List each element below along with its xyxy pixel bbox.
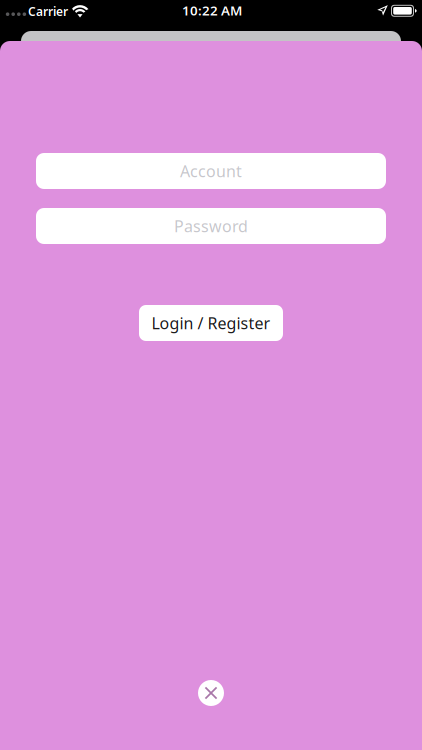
button[interactable]: Close: [198, 680, 224, 706]
staticText: 10:22 AM: [182, 1, 242, 19]
staticText: Password: [174, 215, 248, 237]
button[interactable]: Password: [36, 208, 386, 244]
button[interactable]: Account: [36, 153, 386, 189]
staticText: Login / Register: [151, 312, 270, 334]
staticText: Account: [180, 160, 242, 182]
button[interactable]: Login / Register: [139, 305, 283, 341]
staticText: Carrier: [28, 3, 68, 19]
